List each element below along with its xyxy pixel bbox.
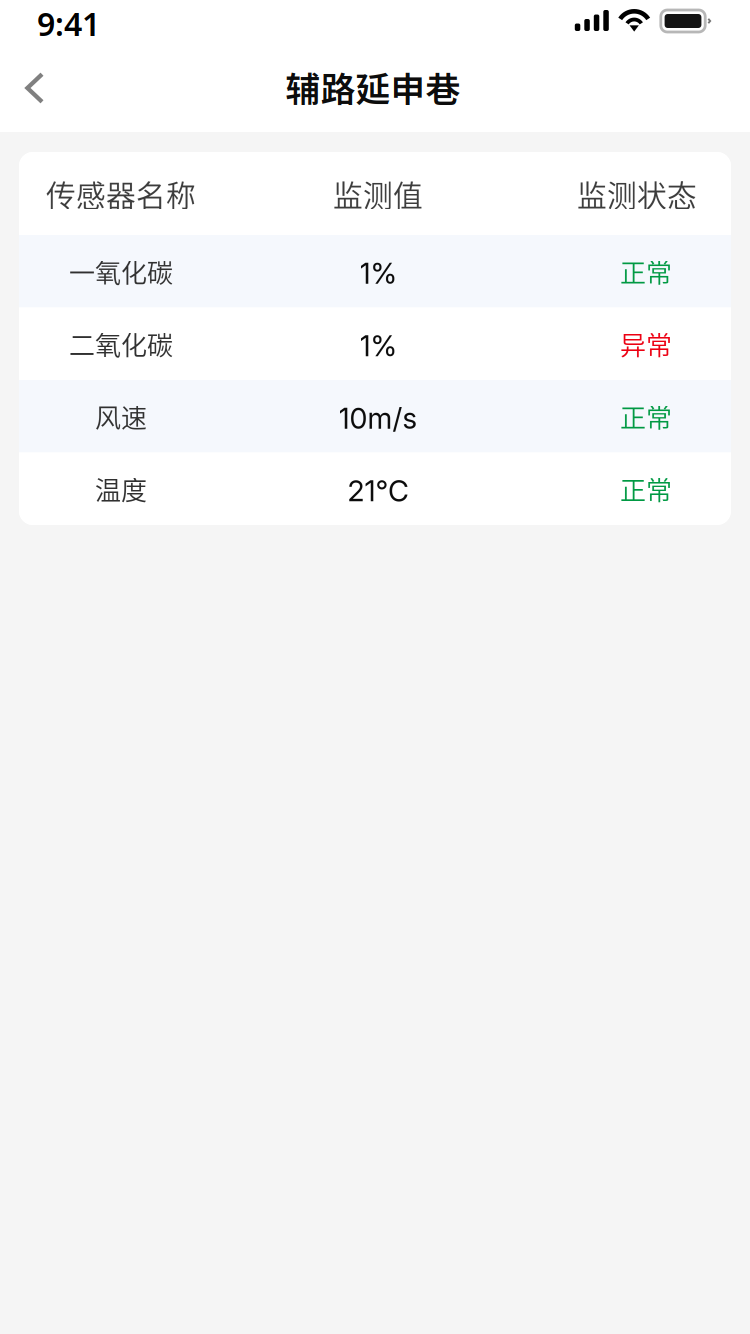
staticText: 9:41 [37, 2, 100, 45]
staticText: 异常 [620, 325, 672, 362]
staticText: 10m/s [338, 401, 417, 436]
button[interactable]: 一氧化碳 [19, 235, 731, 307]
staticText: 正常 [620, 252, 672, 290]
button[interactable]: 二氧化碳 [19, 307, 731, 380]
staticText: 1% [359, 256, 396, 291]
staticText: 传感器名称 [46, 172, 196, 215]
staticText: 21℃ [347, 473, 408, 508]
button[interactable]: 温度 [19, 452, 731, 525]
staticText: 风速 [95, 397, 147, 435]
staticText: 辅路延申巷 [285, 62, 460, 112]
staticText: 监测值 [333, 172, 423, 215]
staticText: 正常 [620, 470, 672, 507]
button[interactable]: Back [0, 61, 68, 115]
staticText: 一氧化碳 [69, 252, 173, 290]
staticText: 二氧化碳 [69, 325, 173, 362]
staticText: 正常 [620, 397, 672, 435]
staticText: 温度 [95, 470, 147, 507]
staticText: 1% [359, 328, 396, 363]
button[interactable]: 风速 [19, 380, 731, 452]
staticText: 监测状态 [577, 172, 697, 215]
